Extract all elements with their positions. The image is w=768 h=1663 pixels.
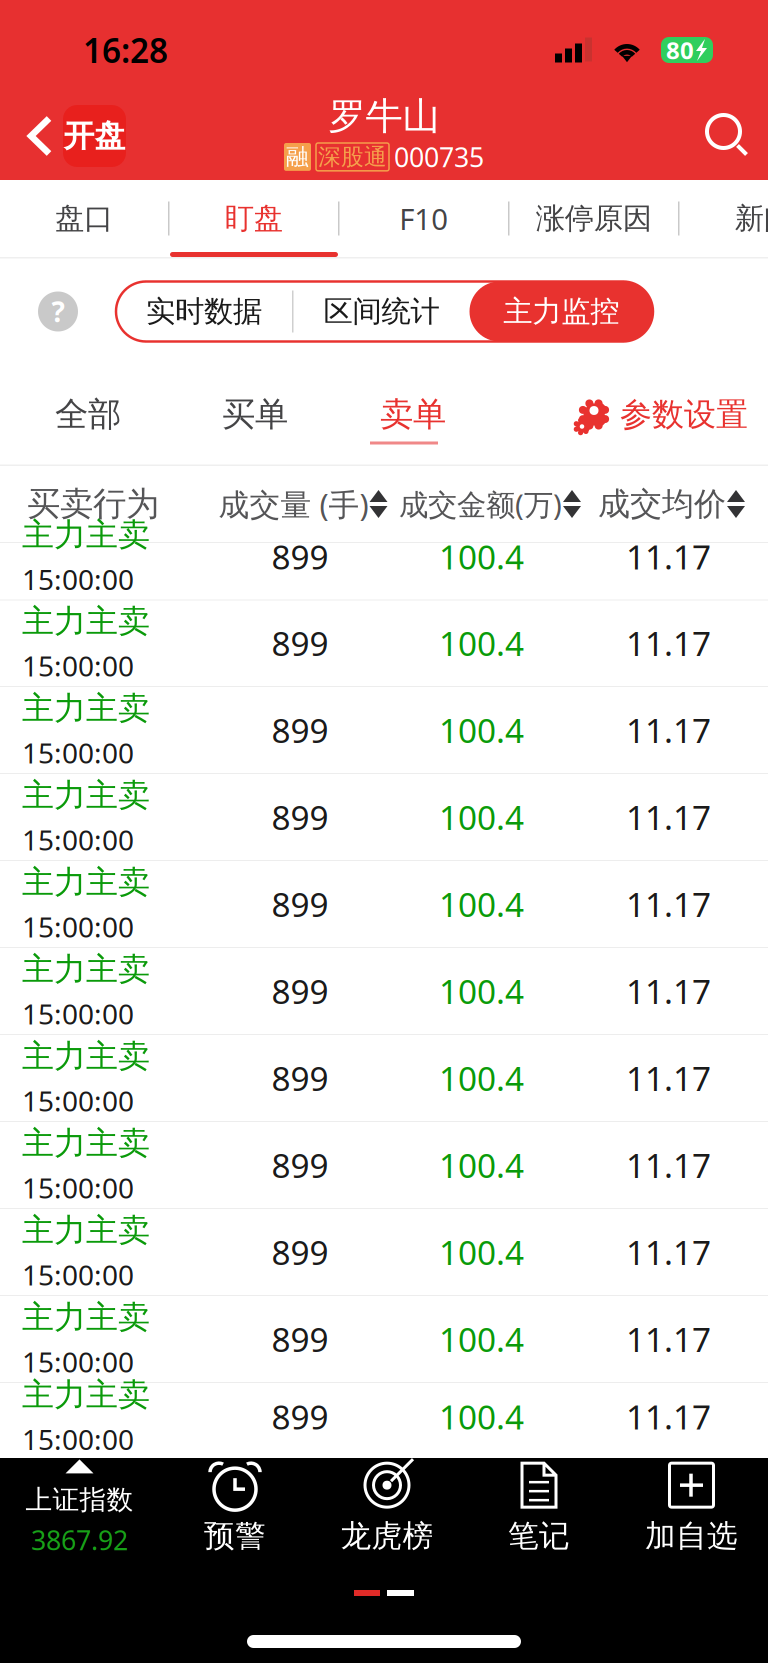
- button[interactable]: 预警: [159, 1458, 311, 1556]
- staticText: 深股通: [318, 143, 387, 171]
- staticText: 15:00:00: [22, 1169, 134, 1206]
- staticText: 15:00:00: [22, 561, 134, 598]
- staticText: 主力主卖: [22, 1375, 150, 1415]
- button[interactable]: Search: [688, 101, 768, 171]
- staticText: 龙虎榜: [340, 1517, 433, 1555]
- staticText: 3867.92: [31, 1522, 128, 1558]
- staticText: 11.17: [626, 795, 711, 839]
- staticText: 买卖行为: [27, 483, 159, 524]
- staticText: 新闻: [735, 200, 768, 236]
- staticText: 成交均价: [598, 484, 726, 524]
- staticText: 15:00:00: [22, 734, 134, 771]
- staticText: 开盘: [63, 117, 125, 155]
- staticText: F10: [399, 199, 448, 238]
- staticText: 盘口: [55, 200, 113, 236]
- button[interactable]: Back: [0, 93, 138, 179]
- staticText: 100.4: [439, 1394, 524, 1439]
- staticText: 100.4: [439, 1056, 524, 1100]
- button[interactable]: Help: [38, 291, 78, 331]
- staticText: 80: [666, 34, 694, 66]
- staticText: 区间统计: [323, 293, 439, 329]
- staticText: 899: [271, 1230, 328, 1274]
- staticText: 899: [271, 969, 328, 1013]
- staticText: 11.17: [626, 1143, 711, 1187]
- button[interactable]: 上证指数: [0, 1458, 159, 1556]
- staticText: 899: [271, 621, 328, 665]
- staticText: 主力主卖: [22, 1298, 150, 1337]
- staticText: 主力主卖: [22, 776, 150, 815]
- button[interactable]: F10: [339, 180, 508, 257]
- button[interactable]: 龙虎榜: [311, 1458, 463, 1556]
- staticText: 899: [271, 882, 328, 926]
- staticText: 融: [286, 143, 309, 171]
- button[interactable]: 区间统计: [293, 282, 469, 340]
- staticText: 100.4: [439, 1230, 524, 1274]
- staticText: 100.4: [439, 882, 524, 926]
- staticText: 主力主卖: [22, 1211, 150, 1250]
- staticText: 000735: [394, 139, 484, 175]
- button[interactable]: 盯盘: [169, 180, 338, 257]
- staticText: 上证指数: [25, 1483, 133, 1516]
- staticText: 11.17: [626, 534, 711, 579]
- staticText: 主力主卖: [22, 950, 150, 989]
- staticText: 15:00:00: [22, 908, 134, 945]
- button[interactable]: 全部: [0, 372, 176, 456]
- staticText: 15:00:00: [22, 1256, 134, 1293]
- staticText: 899: [271, 534, 328, 579]
- staticText: 100.4: [439, 969, 524, 1013]
- staticText: 11.17: [626, 1230, 711, 1274]
- staticText: 899: [271, 1143, 328, 1187]
- staticText: 100.4: [439, 621, 524, 665]
- button[interactable]: 加自选: [615, 1458, 768, 1556]
- staticText: 100.4: [439, 1317, 524, 1361]
- staticText: 11.17: [626, 708, 711, 752]
- staticText: 预警: [204, 1517, 266, 1555]
- staticText: 100.4: [439, 795, 524, 839]
- staticText: 主力主卖: [22, 1124, 150, 1163]
- staticText: 实时数据: [146, 293, 262, 329]
- staticText: ?: [51, 293, 64, 330]
- staticText: 15:00:00: [22, 1082, 134, 1119]
- staticText: 100.4: [439, 534, 524, 579]
- staticText: 涨停原因: [536, 200, 652, 236]
- staticText: 100.4: [439, 708, 524, 752]
- staticText: 成交量 (手): [218, 484, 368, 524]
- staticText: 加自选: [645, 1517, 738, 1555]
- staticText: 11.17: [626, 882, 711, 926]
- staticText: 16:28: [83, 28, 168, 72]
- button[interactable]: 涨停原因: [509, 180, 678, 257]
- staticText: 主力监控: [503, 293, 619, 329]
- staticText: 全部: [55, 394, 121, 435]
- staticText: 11.17: [626, 621, 711, 665]
- staticText: 899: [271, 1394, 328, 1439]
- staticText: 15:00:00: [22, 995, 134, 1032]
- button[interactable]: 买单: [176, 372, 334, 456]
- staticText: 15:00:00: [22, 821, 134, 858]
- button[interactable]: 卖单: [334, 372, 492, 456]
- staticText: 主力主卖: [22, 863, 150, 902]
- staticText: 卖单: [380, 394, 446, 435]
- button[interactable]: 盘口: [0, 180, 168, 257]
- button[interactable]: 主力监控: [469, 281, 653, 341]
- staticText: 参数设置: [620, 395, 748, 434]
- staticText: 899: [271, 1317, 328, 1361]
- staticText: 买单: [222, 394, 288, 435]
- staticText: 主力主卖: [22, 602, 150, 641]
- staticText: 15:00:00: [22, 647, 134, 684]
- staticText: 11.17: [626, 969, 711, 1013]
- staticText: 罗牛山: [328, 93, 439, 139]
- staticText: 盯盘: [225, 200, 283, 236]
- button[interactable]: 笔记: [463, 1458, 615, 1556]
- button[interactable]: 参数设置: [573, 377, 768, 452]
- button[interactable]: 新闻: [679, 180, 768, 257]
- staticText: 成交金额(万): [399, 484, 562, 523]
- staticText: 899: [271, 708, 328, 752]
- staticText: 15:00:00: [22, 1421, 134, 1458]
- staticText: 11.17: [626, 1394, 711, 1439]
- staticText: 主力主卖: [22, 689, 150, 728]
- staticText: 主力主卖: [22, 515, 150, 555]
- staticText: 11.17: [626, 1317, 711, 1361]
- staticText: 100.4: [439, 1143, 524, 1187]
- staticText: 主力主卖: [22, 1037, 150, 1076]
- button[interactable]: 实时数据: [116, 282, 292, 340]
